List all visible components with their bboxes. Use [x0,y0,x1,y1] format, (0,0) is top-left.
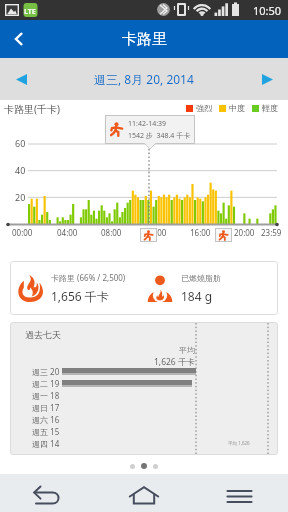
staticText: 23:59 [261,227,282,238]
button[interactable]: Previous day [0,58,42,100]
staticText: 過去七天 [25,329,61,340]
staticText: 20 [15,191,26,203]
button[interactable]: Next day [246,58,288,100]
staticText: 20:00 [234,227,255,238]
button[interactable]: Activity [215,228,232,242]
staticText: 12:00 [146,227,167,238]
staticText: 10:50 [253,3,282,18]
staticText: 1,626 千卡 [154,356,195,368]
staticText: 週五 15 [32,426,60,437]
staticText: 1,656 千卡 [51,288,109,304]
button[interactable]: Activity [140,228,157,242]
staticText: 週三, 8月 20, 2014 [94,71,194,87]
staticText: 卡路里(千卡) [4,102,60,116]
staticText: 卡路里 [122,30,167,49]
staticText: 平均 1,626 [228,440,250,446]
button[interactable]: 卡路里 (66% / 2,500) [10,261,278,315]
staticText: 週日 17 [32,402,60,413]
button[interactable]: Home [96,474,192,512]
staticText: 週一 18 [32,390,60,401]
staticText: 11:42-14:39 [128,119,167,129]
staticText: 04:00 [57,227,78,238]
staticText: 40 [15,164,26,176]
staticText: 輕度 [262,103,278,113]
staticText: 週四 14 [32,438,60,449]
staticText: 強烈 [196,103,212,113]
staticText: 卡路里 (66% / 2,500) [51,272,126,283]
button[interactable]: Menu [192,474,288,512]
staticText: 週三 20 [32,366,60,377]
staticText: 中度 [229,103,245,113]
button[interactable]: Back [0,20,38,58]
button[interactable]: 過去七天 [10,322,278,455]
staticText: 08:00 [101,227,122,238]
staticText: 00:00 [12,227,33,238]
staticText: 平均 [179,345,195,355]
button[interactable]: Back [0,474,96,512]
staticText: 週二 19 [32,378,60,389]
staticText: 週六 16 [32,414,60,425]
staticText: LTE [24,7,36,17]
staticText: 184 g [181,288,213,304]
staticText: 60 [15,137,26,149]
staticText: 16:00 [190,227,211,238]
staticText: 已燃燒脂肪 [181,273,221,283]
staticText: 1542 步 348.4 千卡 [128,131,191,141]
